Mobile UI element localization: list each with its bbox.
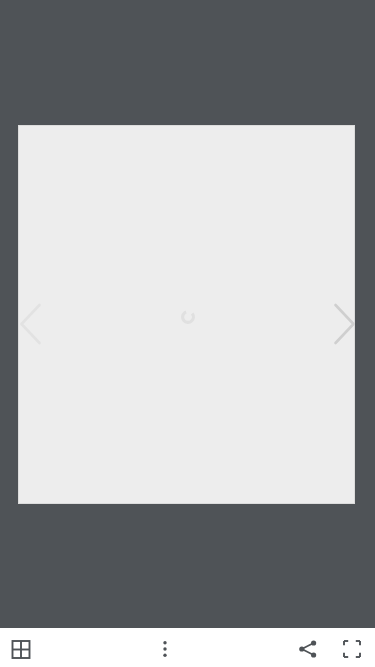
button[interactable]: More options	[148, 632, 182, 666]
button[interactable]: Next	[325, 299, 357, 349]
button[interactable]: Grid view	[4, 632, 38, 666]
button[interactable]: Previous	[18, 299, 50, 349]
button[interactable]: Fullscreen	[335, 632, 369, 666]
button[interactable]: Share	[291, 632, 325, 666]
